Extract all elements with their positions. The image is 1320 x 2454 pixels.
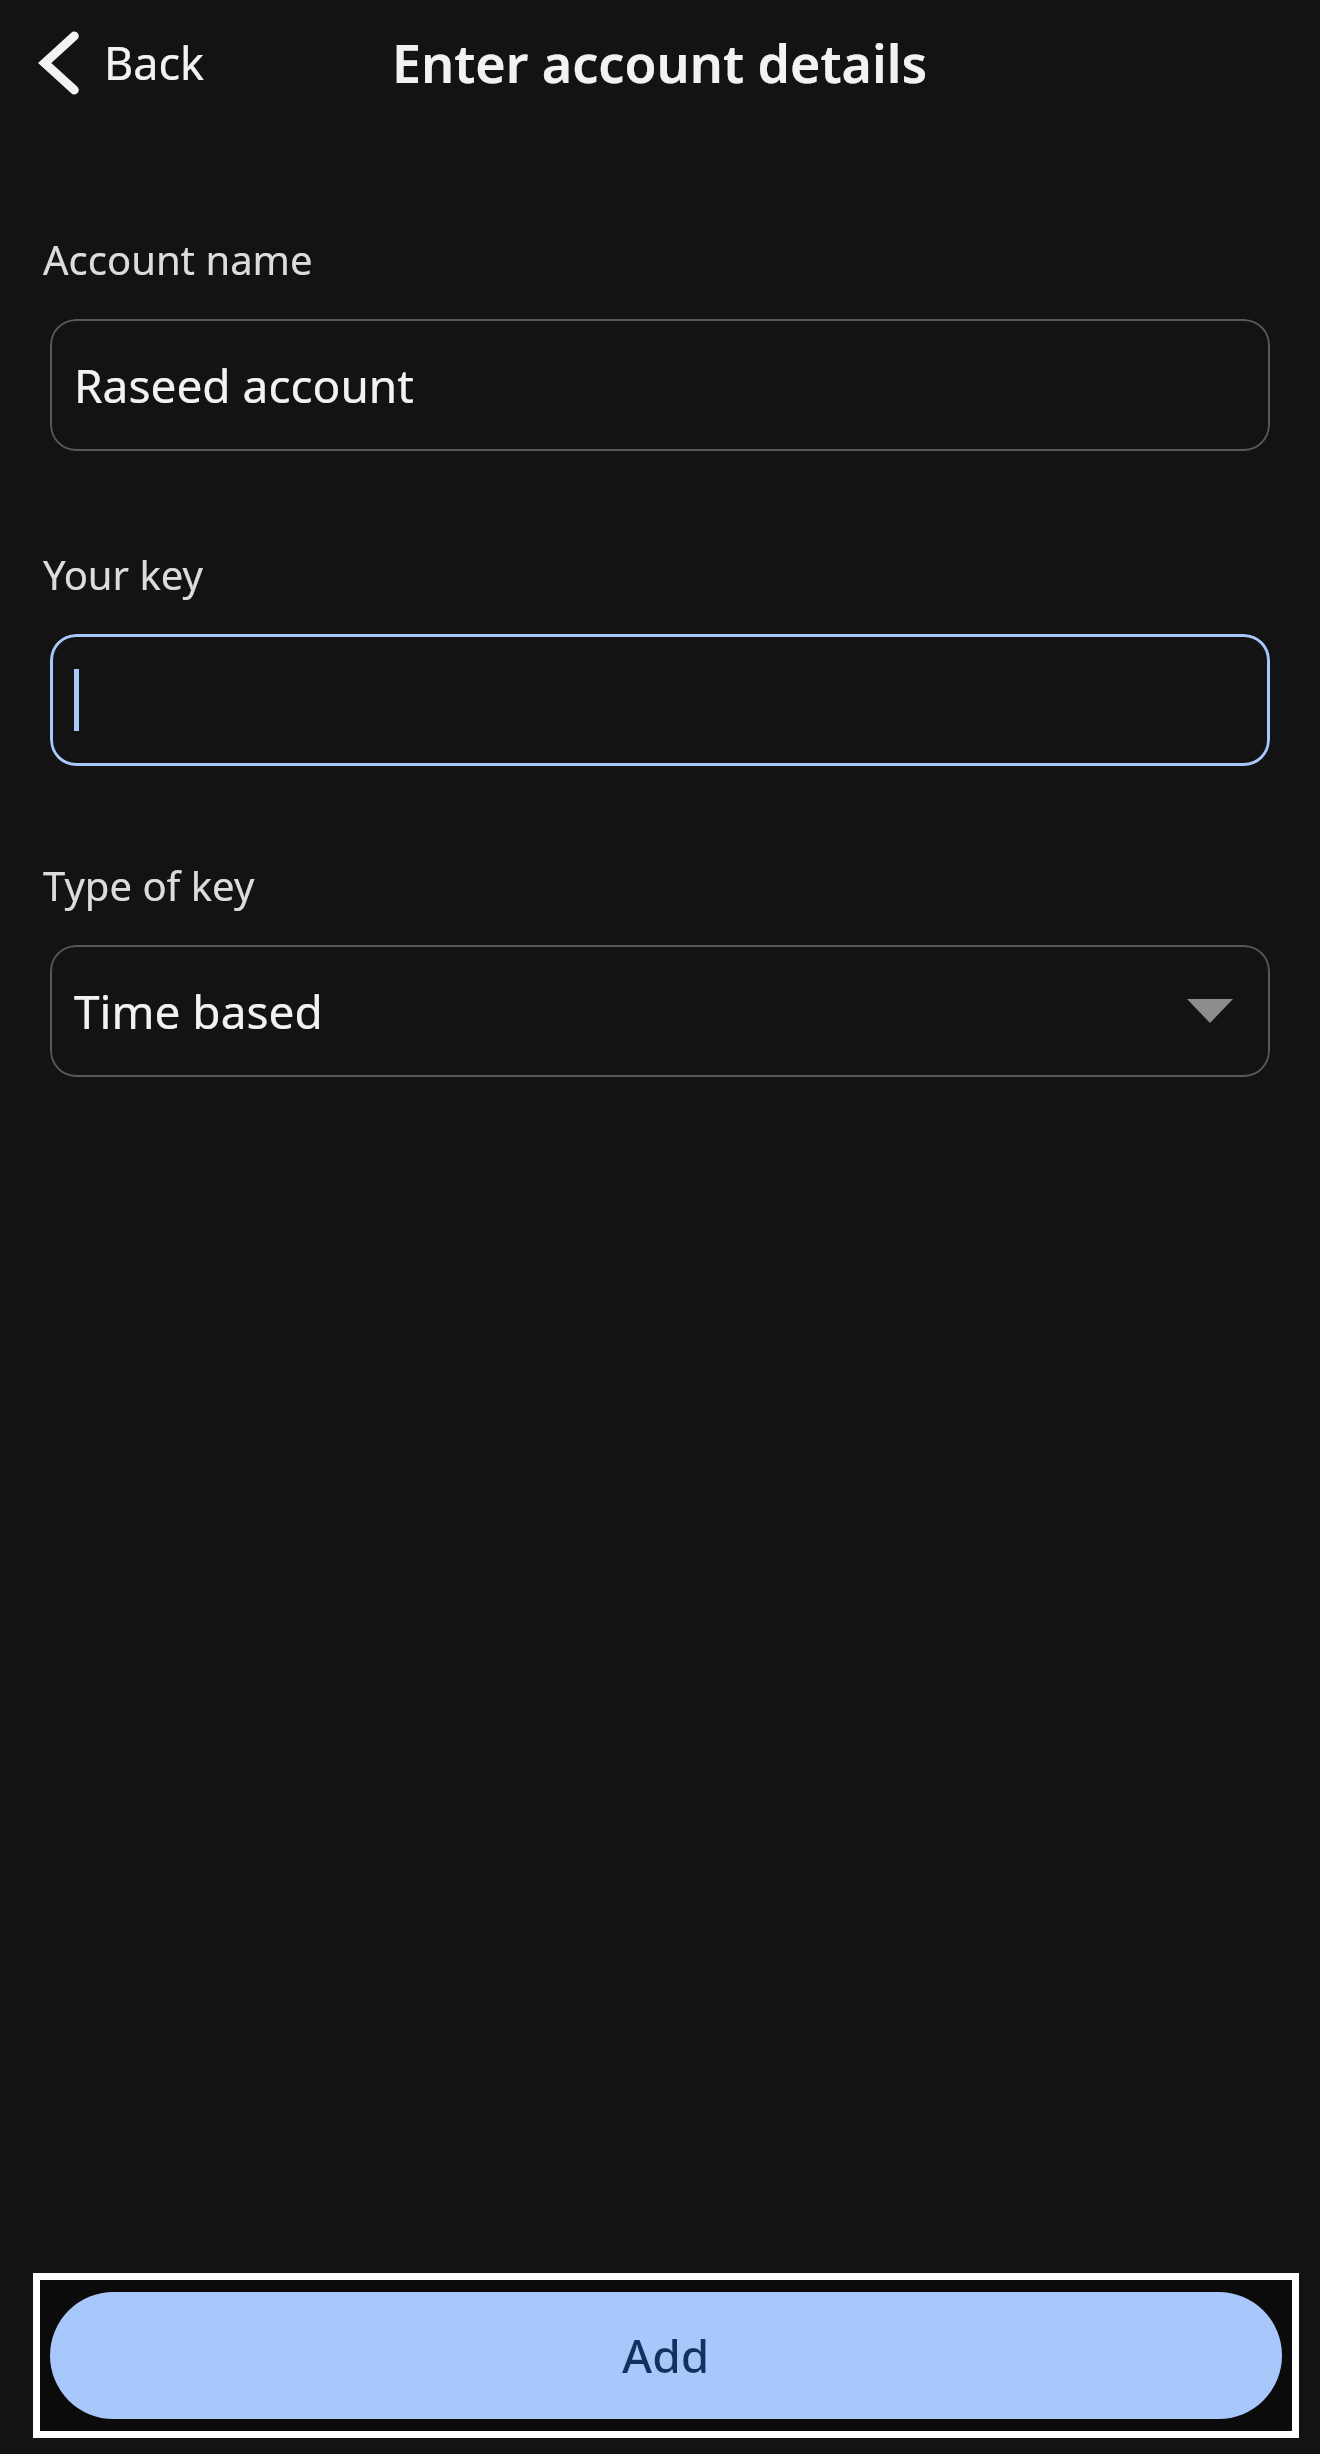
button[interactable] xyxy=(50,634,1270,766)
staticText: Type of key xyxy=(43,858,255,912)
staticText: Enter account details xyxy=(392,27,928,98)
staticText: Raseed account xyxy=(74,354,414,417)
button[interactable]: Add xyxy=(50,2292,1282,2419)
staticText: Your key xyxy=(43,547,203,601)
staticText: Add xyxy=(622,2324,710,2387)
staticText: Back xyxy=(104,32,205,93)
other: Open key type dropdown xyxy=(1187,999,1233,1023)
button[interactable]: Raseed account xyxy=(50,319,1270,451)
button[interactable]: Back xyxy=(22,20,227,105)
staticText: Account name xyxy=(43,232,313,286)
other: Back xyxy=(42,33,76,93)
button[interactable]: Time based xyxy=(50,945,1270,1077)
staticText: Time based xyxy=(74,980,323,1043)
